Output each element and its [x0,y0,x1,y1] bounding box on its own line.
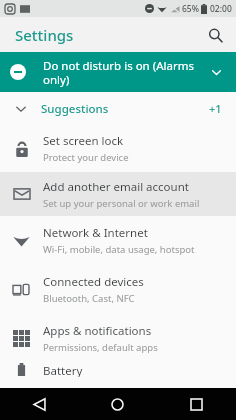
staticText: Set screen lock [43,133,124,149]
button[interactable]: Recent apps [157,388,236,420]
staticText: Permissions, default apps [43,341,158,354]
staticText: Bluetooth, Cast, NFC [43,292,135,305]
staticText: Network & Internet [43,225,148,241]
button[interactable]: Set screen lock [0,125,236,172]
button[interactable]: Do not disturb is on (Alarms only) [0,52,236,92]
button[interactable]: Suggestions [0,92,236,125]
staticText: Battery [43,363,83,377]
button[interactable]: Search [202,22,228,48]
staticText: Suggestions [41,101,209,117]
button[interactable]: Apps & notifications [0,314,236,363]
button[interactable]: Battery [0,363,236,377]
button[interactable]: Home [78,388,157,420]
staticText: Connected devices [43,274,144,290]
button[interactable]: Connected devices [0,265,236,314]
staticText: Set up your personal or work email [43,197,200,210]
button[interactable]: Network & Internet [0,216,236,265]
staticText: Add another email account [43,179,189,195]
staticText: Do not disturb is on (Alarms only) [43,58,200,87]
staticText: 65% [182,3,199,15]
staticText: Wi-Fi, mobile, data usage, hotspot [43,243,195,256]
button[interactable]: Back [0,388,78,420]
staticText: Protect your device [43,151,129,164]
staticText: Settings [15,25,74,45]
button[interactable]: Expand [206,62,226,82]
staticText: 02:00 [210,3,232,15]
staticText: +1 [209,101,222,116]
staticText: Apps & notifications [43,323,152,339]
button[interactable]: Add another email account [0,172,236,216]
